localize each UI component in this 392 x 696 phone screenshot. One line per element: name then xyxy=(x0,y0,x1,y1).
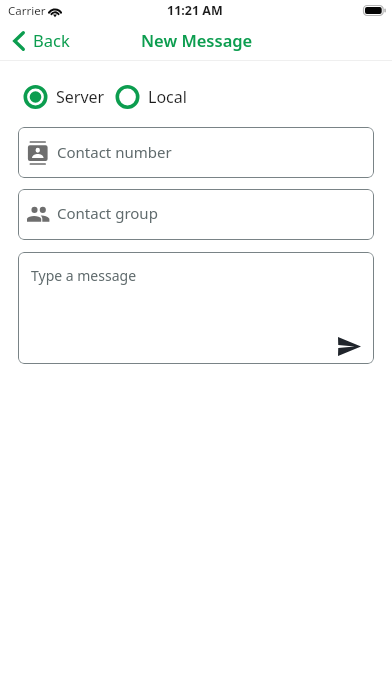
button[interactable]: Server xyxy=(23,85,105,109)
staticText: Local xyxy=(148,86,187,108)
button[interactable]: Contact number xyxy=(18,127,374,178)
staticText: Contact number xyxy=(57,142,172,162)
staticText: Server xyxy=(56,86,105,108)
staticText: Carrier xyxy=(8,3,46,19)
staticText: New Message xyxy=(141,29,253,51)
button[interactable]: Send xyxy=(335,332,363,360)
button[interactable]: Contact group xyxy=(18,189,374,240)
button[interactable]: Type a message xyxy=(18,252,374,364)
button[interactable]: Back xyxy=(13,24,70,61)
staticText: 11:21 AM xyxy=(167,2,223,19)
button[interactable]: Local xyxy=(115,85,187,109)
staticText: Type a message xyxy=(31,266,137,285)
staticText: Back xyxy=(33,29,70,51)
staticText: Contact group xyxy=(57,203,158,223)
